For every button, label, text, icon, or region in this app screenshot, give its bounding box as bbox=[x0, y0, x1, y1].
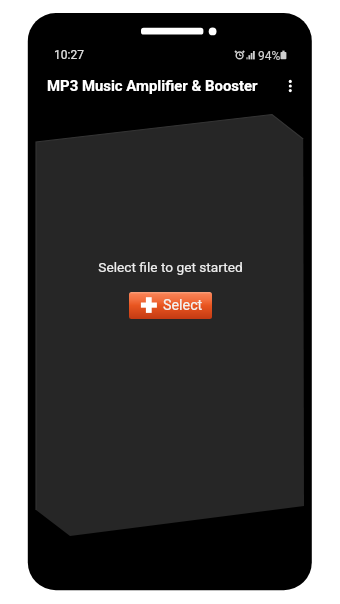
staticText: 94% bbox=[258, 49, 281, 63]
staticText: Select file to get started bbox=[98, 259, 243, 275]
button[interactable]: More options bbox=[275, 71, 304, 100]
staticText: MP3 Music Amplifier & Booster bbox=[47, 77, 258, 94]
staticText: 10:27 bbox=[54, 48, 84, 62]
staticText: Select bbox=[163, 297, 203, 314]
button[interactable]: Select bbox=[129, 292, 212, 319]
